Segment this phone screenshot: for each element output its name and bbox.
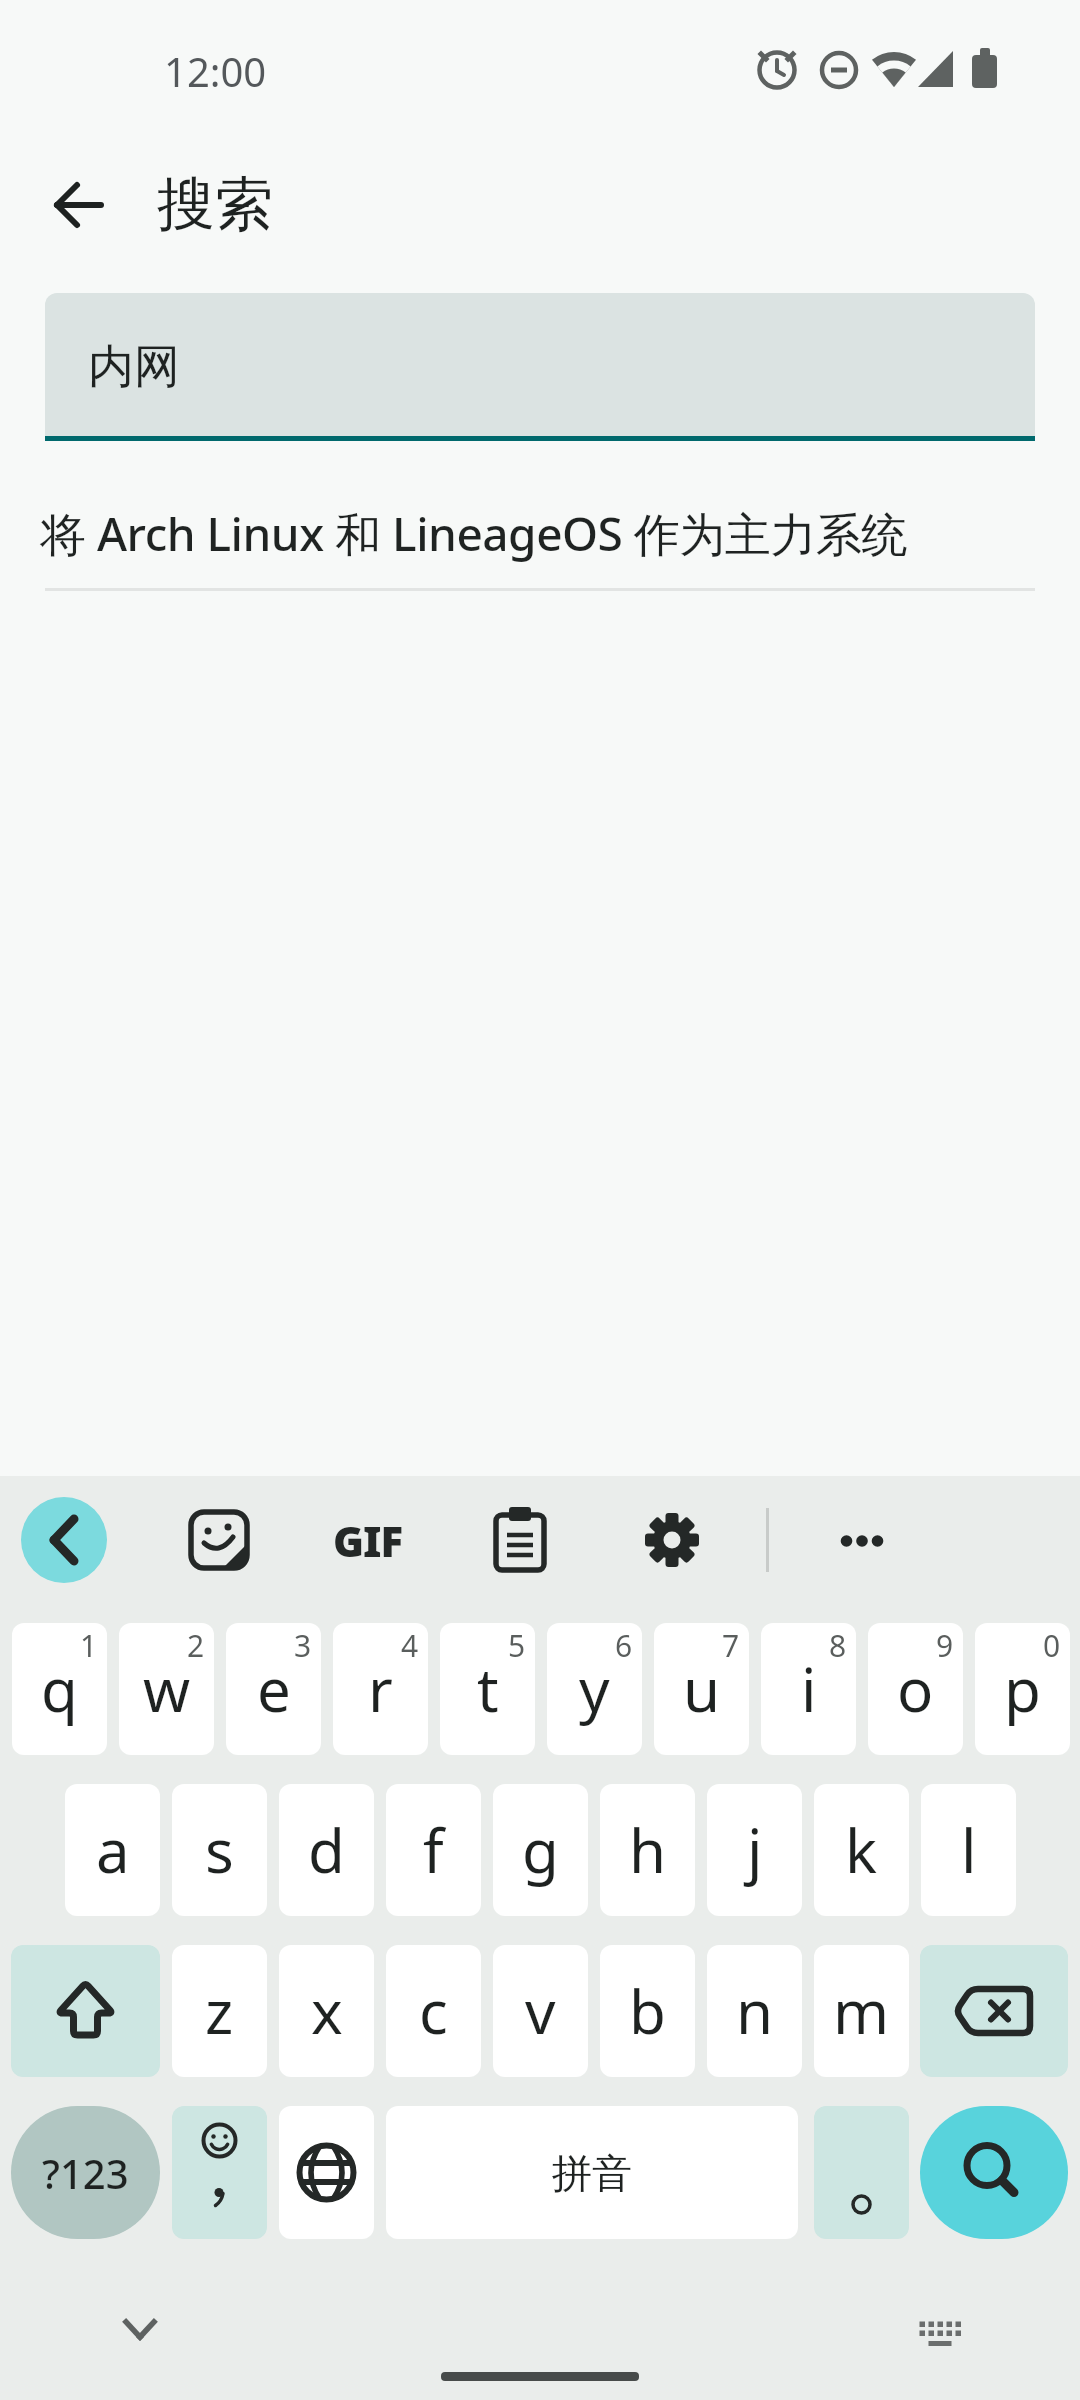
staticText: e (257, 1648, 291, 1730)
staticText: i (801, 1648, 817, 1730)
button[interactable] (172, 2106, 267, 2239)
button[interactable] (910, 2300, 970, 2360)
staticText: 4 (401, 1625, 419, 1666)
button[interactable] (814, 2106, 909, 2239)
staticText: ?123 (42, 2146, 129, 2200)
button[interactable] (110, 2300, 170, 2360)
staticText: t (477, 1648, 499, 1730)
button[interactable]: 内网 (45, 293, 1035, 441)
staticText: 拼音 (552, 2148, 632, 2198)
button[interactable]: u (654, 1623, 749, 1755)
staticText: 12:00 (164, 44, 267, 94)
staticText: y (579, 1648, 610, 1730)
button[interactable]: g (493, 1784, 588, 1916)
staticText: r (368, 1648, 393, 1730)
staticText: x (311, 1970, 343, 2052)
button[interactable] (279, 2106, 374, 2239)
button[interactable]: h (600, 1784, 695, 1916)
button[interactable]: c (386, 1945, 481, 2077)
staticText: GIF (333, 1512, 403, 1569)
staticText: 3 (294, 1625, 312, 1666)
staticText: j (747, 1809, 763, 1891)
button[interactable] (21, 1497, 107, 1583)
staticText: 6 (615, 1625, 633, 1666)
staticText: m (833, 1970, 890, 2052)
button[interactable]: ?123 (11, 2106, 160, 2239)
staticText: 8 (829, 1625, 847, 1666)
staticText: 2 (187, 1625, 205, 1666)
button[interactable]: m (814, 1945, 909, 2077)
staticText: 7 (722, 1625, 740, 1666)
staticText: c (419, 1970, 448, 2052)
staticText: b (629, 1970, 666, 2052)
staticText: p (1004, 1648, 1041, 1730)
staticText: o (897, 1648, 934, 1730)
staticText: 9 (936, 1625, 954, 1666)
staticText: z (205, 1970, 234, 2052)
staticText: s (205, 1809, 234, 1891)
button[interactable]: q (12, 1623, 107, 1755)
staticText: 将 Arch Linux 和 LineageOS 作为主力系统 (40, 502, 907, 565)
staticText: 内网 (88, 338, 180, 396)
button[interactable]: v (493, 1945, 588, 2077)
staticText: l (961, 1809, 977, 1891)
button[interactable]: GIF (318, 1500, 418, 1580)
button[interactable] (920, 1945, 1068, 2077)
button[interactable] (822, 1500, 902, 1580)
button[interactable]: a (65, 1784, 160, 1916)
button[interactable]: y (547, 1623, 642, 1755)
staticText: f (423, 1809, 444, 1891)
button[interactable]: l (921, 1784, 1016, 1916)
button[interactable] (480, 1500, 560, 1580)
staticText: 搜索 (157, 168, 273, 240)
staticText: v (525, 1970, 556, 2052)
button[interactable]: x (279, 1945, 374, 2077)
staticText: d (308, 1809, 345, 1891)
button[interactable] (632, 1500, 712, 1580)
button[interactable]: k (814, 1784, 909, 1916)
button[interactable]: o (868, 1623, 963, 1755)
staticText: 5 (508, 1625, 526, 1666)
staticText: u (683, 1648, 721, 1730)
button[interactable] (920, 2106, 1068, 2239)
staticText: a (96, 1809, 130, 1891)
button[interactable]: j (707, 1784, 802, 1916)
staticText: q (41, 1648, 78, 1730)
button[interactable]: z (172, 1945, 267, 2077)
button[interactable]: s (172, 1784, 267, 1916)
staticText: g (522, 1809, 559, 1891)
button[interactable]: i (761, 1623, 856, 1755)
button[interactable]: r (333, 1623, 428, 1755)
staticText: n (736, 1970, 774, 2052)
staticText: 0 (1043, 1625, 1061, 1666)
button[interactable]: n (707, 1945, 802, 2077)
staticText: k (845, 1809, 878, 1891)
button[interactable]: f (386, 1784, 481, 1916)
button[interactable]: e (226, 1623, 321, 1755)
staticText: w (143, 1648, 191, 1730)
button[interactable]: 将 Arch Linux 和 LineageOS 作为主力系统 (0, 478, 1080, 588)
button[interactable]: p (975, 1623, 1070, 1755)
button[interactable]: 拼音 (386, 2106, 798, 2239)
staticText: 1 (80, 1625, 98, 1666)
button[interactable] (179, 1500, 259, 1580)
button[interactable] (46, 173, 110, 237)
button[interactable] (11, 1945, 160, 2077)
button[interactable]: b (600, 1945, 695, 2077)
button[interactable]: d (279, 1784, 374, 1916)
button[interactable]: t (440, 1623, 535, 1755)
staticText: h (629, 1809, 667, 1891)
button[interactable]: w (119, 1623, 214, 1755)
